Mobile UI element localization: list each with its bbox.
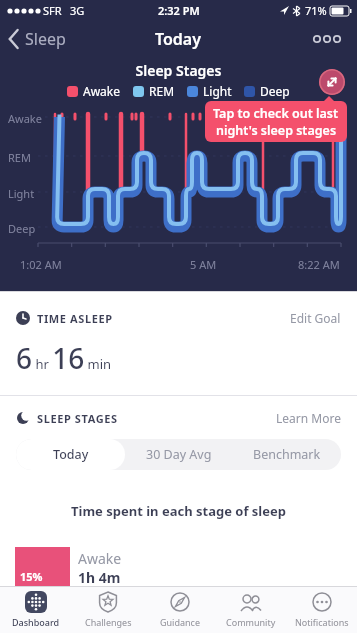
button[interactable]: Sleep: [8, 28, 66, 50]
staticText: SFR: [43, 3, 62, 18]
button[interactable]: Edit Goal: [290, 310, 341, 326]
staticText: Time spent in each stage of sleep: [0, 502, 357, 520]
staticText: 15%: [20, 569, 43, 584]
button[interactable]: [313, 35, 341, 43]
staticText: Notifications: [295, 616, 349, 628]
staticText: Guidance: [160, 616, 200, 628]
button[interactable]: SLEEP STAGES: [16, 410, 341, 426]
staticText: 30 Day Avg: [146, 446, 212, 463]
staticText: Deep: [260, 83, 290, 99]
button[interactable]: Guidance: [144, 587, 215, 633]
staticText: Light: [8, 186, 35, 201]
staticText: 5 AM: [190, 257, 217, 272]
staticText: 8:22 AM: [298, 257, 340, 272]
button[interactable]: TIME ASLEEP: [16, 310, 341, 326]
staticText: Light: [203, 83, 232, 99]
staticText: Deep: [8, 221, 36, 236]
staticText: 1:02 AM: [20, 257, 62, 272]
staticText: Dashboard: [12, 616, 60, 628]
staticText: REM: [8, 150, 31, 165]
button[interactable]: Dashboard: [0, 587, 72, 633]
staticText: 71%: [305, 3, 327, 18]
staticText: 2:32 PM: [158, 3, 200, 18]
staticText: Challenges: [85, 616, 132, 628]
staticText: Today: [155, 28, 202, 50]
staticText: Today: [53, 446, 89, 463]
button[interactable]: Learn More: [276, 410, 341, 426]
staticText: SLEEP STAGES: [37, 411, 118, 426]
button[interactable]: Notifications: [286, 587, 357, 633]
staticText: Awake: [78, 549, 122, 568]
staticText: 6 hr 16 min: [16, 339, 112, 377]
staticText: night's sleep stages: [216, 122, 337, 139]
staticText: Awake: [8, 111, 42, 126]
staticText: 1h 4m: [78, 568, 121, 587]
button[interactable]: 30 Day Avg: [125, 439, 233, 470]
staticText: 3G: [70, 3, 85, 18]
staticText: Awake: [83, 83, 121, 99]
staticText: Tap to check out last: [213, 105, 339, 122]
staticText: Community: [226, 616, 276, 628]
button[interactable]: Benchmark: [233, 439, 341, 470]
button[interactable]: [319, 69, 345, 95]
button[interactable]: Community: [215, 587, 286, 633]
staticText: REM: [149, 83, 175, 99]
staticText: TIME ASLEEP: [37, 311, 113, 326]
button[interactable]: Today: [16, 439, 125, 470]
staticText: Benchmark: [253, 446, 321, 463]
button[interactable]: Challenges: [72, 587, 144, 633]
staticText: Sleep Stages: [0, 61, 357, 80]
staticText: Sleep: [25, 28, 66, 50]
